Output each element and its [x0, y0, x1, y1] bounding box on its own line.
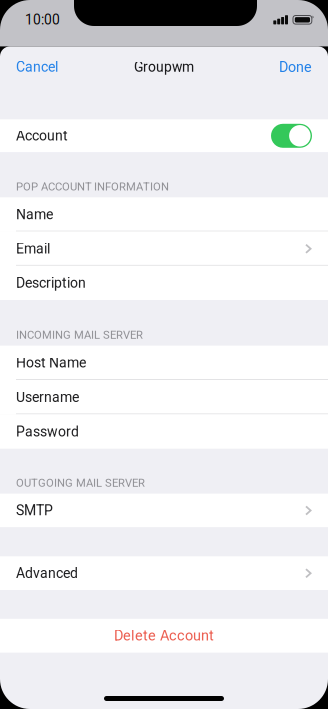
button[interactable]: Delete Account — [0, 619, 328, 653]
staticText: OUTGOING MAIL SERVER — [16, 476, 145, 490]
button[interactable]: Done — [279, 59, 312, 75]
button[interactable]: Username — [0, 380, 328, 414]
button[interactable]: Description — [0, 266, 328, 300]
staticText: Advanced — [16, 565, 78, 581]
button[interactable]: Email — [0, 232, 328, 266]
staticText: Description — [16, 275, 86, 291]
staticText: Password — [16, 423, 79, 440]
button[interactable]: Host Name — [0, 346, 328, 380]
button[interactable]: Name — [0, 197, 328, 232]
staticText: SMTP — [16, 502, 53, 519]
staticText: Groupwm — [134, 59, 194, 75]
button[interactable]: Advanced — [0, 556, 328, 590]
staticText: Host Name — [16, 355, 86, 371]
button[interactable]: Account — [0, 119, 328, 152]
staticText: Email — [16, 240, 50, 257]
button[interactable]: SMTP — [0, 494, 328, 527]
staticText: 10:00 — [25, 12, 60, 28]
button[interactable]: Password — [0, 414, 328, 449]
staticText: INCOMING MAIL SERVER — [16, 328, 143, 342]
staticText: POP ACCOUNT INFORMATION — [16, 180, 169, 193]
staticText: Delete Account — [114, 627, 214, 644]
staticText: Username — [16, 389, 79, 405]
button[interactable]: Cancel — [16, 59, 58, 75]
staticText: Account — [16, 128, 68, 144]
staticText: Cancel — [16, 59, 58, 75]
staticText: Done — [279, 59, 312, 75]
staticText: Name — [16, 206, 53, 223]
